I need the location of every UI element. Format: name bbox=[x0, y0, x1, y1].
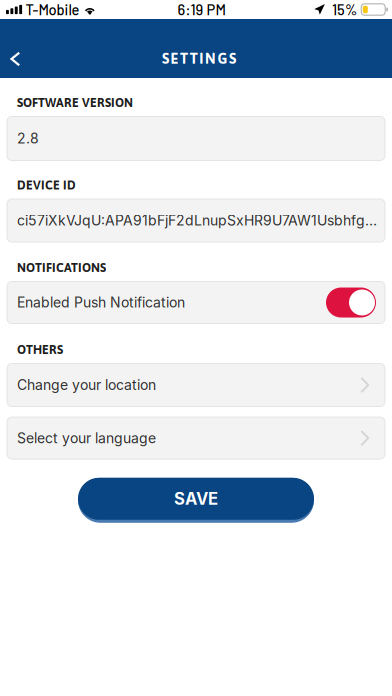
staticText: 6:19 PM bbox=[178, 1, 226, 18]
staticText: DEVICE ID bbox=[17, 178, 76, 192]
staticText: NOTIFICATIONS bbox=[17, 260, 106, 275]
staticText: 2.8 bbox=[17, 130, 39, 147]
button[interactable]: SAVE bbox=[78, 478, 314, 523]
staticText: ci57iXkVJqU:APA91bFjF2dLnupSxHR9U7AW1Usb… bbox=[17, 212, 377, 229]
staticText: OTHERS bbox=[17, 342, 63, 357]
button[interactable]: Select your language bbox=[0, 417, 392, 459]
button[interactable]: Enabled Push Notification bbox=[326, 287, 376, 317]
staticText: Enabled Push Notification bbox=[17, 294, 185, 311]
button[interactable]: Change your location bbox=[0, 363, 392, 406]
button[interactable]: Back bbox=[0, 19, 52, 78]
staticText: SETTINGS bbox=[162, 50, 236, 67]
staticText: Change your location bbox=[17, 376, 156, 393]
staticText: T-Mobile bbox=[25, 1, 79, 18]
staticText: SOFTWARE VERSION bbox=[17, 95, 133, 110]
staticText: SAVE bbox=[174, 489, 218, 509]
staticText: Select your language bbox=[17, 430, 156, 446]
staticText: 15% bbox=[332, 1, 357, 18]
